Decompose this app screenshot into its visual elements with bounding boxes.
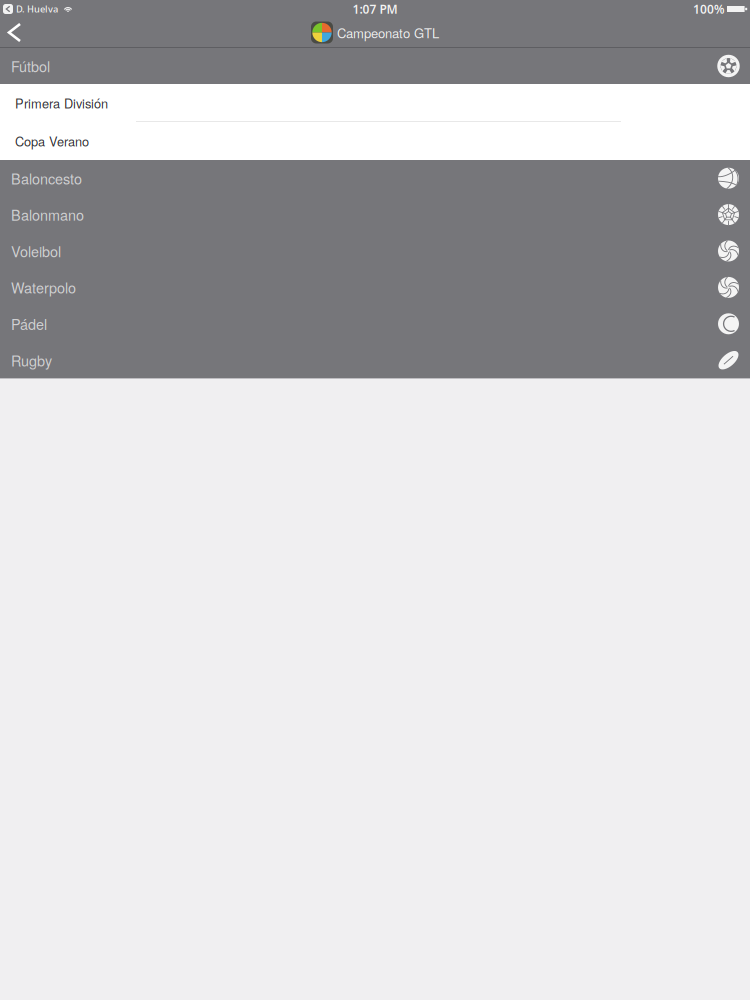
staticText: Primera División — [15, 94, 108, 112]
staticText: Balonmano — [11, 204, 84, 225]
staticText: Campeonato GTL — [337, 23, 439, 42]
button[interactable]: Baloncesto — [0, 160, 750, 196]
staticText: Rugby — [11, 350, 52, 370]
staticText: 1:07 PM — [352, 1, 397, 17]
button[interactable]: Balonmano — [0, 196, 750, 233]
button[interactable]: Primera División — [0, 84, 750, 122]
staticText: D. Huelva — [16, 3, 58, 15]
staticText: Copa Verano — [15, 132, 89, 150]
button[interactable]: Waterpolo — [0, 269, 750, 306]
button[interactable]: Fútbol — [0, 48, 750, 84]
button[interactable]: Voleibol — [0, 233, 750, 269]
button[interactable]: Copa Verano — [0, 122, 750, 160]
staticText: 100% — [693, 1, 725, 17]
button[interactable]: Back — [0, 18, 36, 47]
staticText: Fútbol — [11, 56, 50, 76]
staticText: Pádel — [11, 313, 47, 334]
staticText: Waterpolo — [11, 277, 76, 298]
staticText: Voleibol — [11, 241, 61, 261]
staticText: Baloncesto — [11, 168, 82, 188]
button[interactable]: Rugby — [0, 342, 750, 378]
button[interactable]: Pádel — [0, 306, 750, 342]
